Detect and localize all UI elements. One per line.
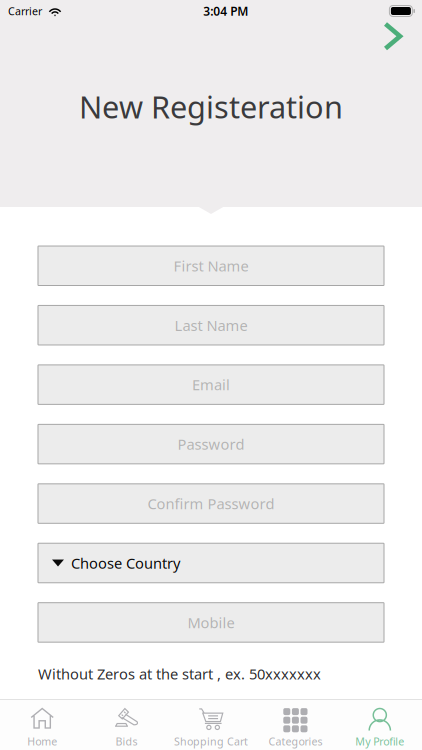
button[interactable]: Categories — [253, 699, 338, 750]
button[interactable]: Bids — [84, 699, 169, 750]
staticText: My Profile — [355, 734, 404, 748]
button[interactable]: Mobile — [38, 603, 384, 642]
staticText: Email — [192, 375, 230, 394]
staticText: Password — [177, 434, 244, 454]
staticText: Home — [27, 734, 57, 748]
button[interactable]: Last Name — [38, 305, 384, 345]
staticText: Categories — [268, 734, 322, 748]
button[interactable]: Email — [38, 365, 384, 404]
staticText: Without Zeros at the start , ex. 50xxxxx… — [38, 664, 321, 684]
button[interactable]: Confirm Password — [38, 484, 384, 523]
staticText: New Registeration — [79, 86, 343, 127]
button[interactable]: Shopping Cart — [169, 699, 253, 750]
button[interactable]: First Name — [38, 246, 384, 285]
button[interactable]: Continue — [376, 20, 409, 52]
staticText: Confirm Password — [147, 494, 274, 513]
button[interactable]: My Profile — [338, 699, 422, 750]
button[interactable]: Home — [0, 699, 84, 750]
staticText: Bids — [116, 734, 138, 748]
staticText: Last Name — [174, 315, 247, 335]
button[interactable]: Password — [38, 424, 384, 464]
staticText: Choose Country — [71, 553, 180, 573]
staticText: Shopping Cart — [174, 734, 248, 748]
staticText: Carrier — [8, 4, 42, 18]
staticText: 3:04 PM — [203, 3, 248, 19]
button[interactable]: Choose Country — [38, 543, 384, 583]
staticText: First Name — [173, 256, 248, 275]
staticText: Mobile — [187, 613, 234, 632]
